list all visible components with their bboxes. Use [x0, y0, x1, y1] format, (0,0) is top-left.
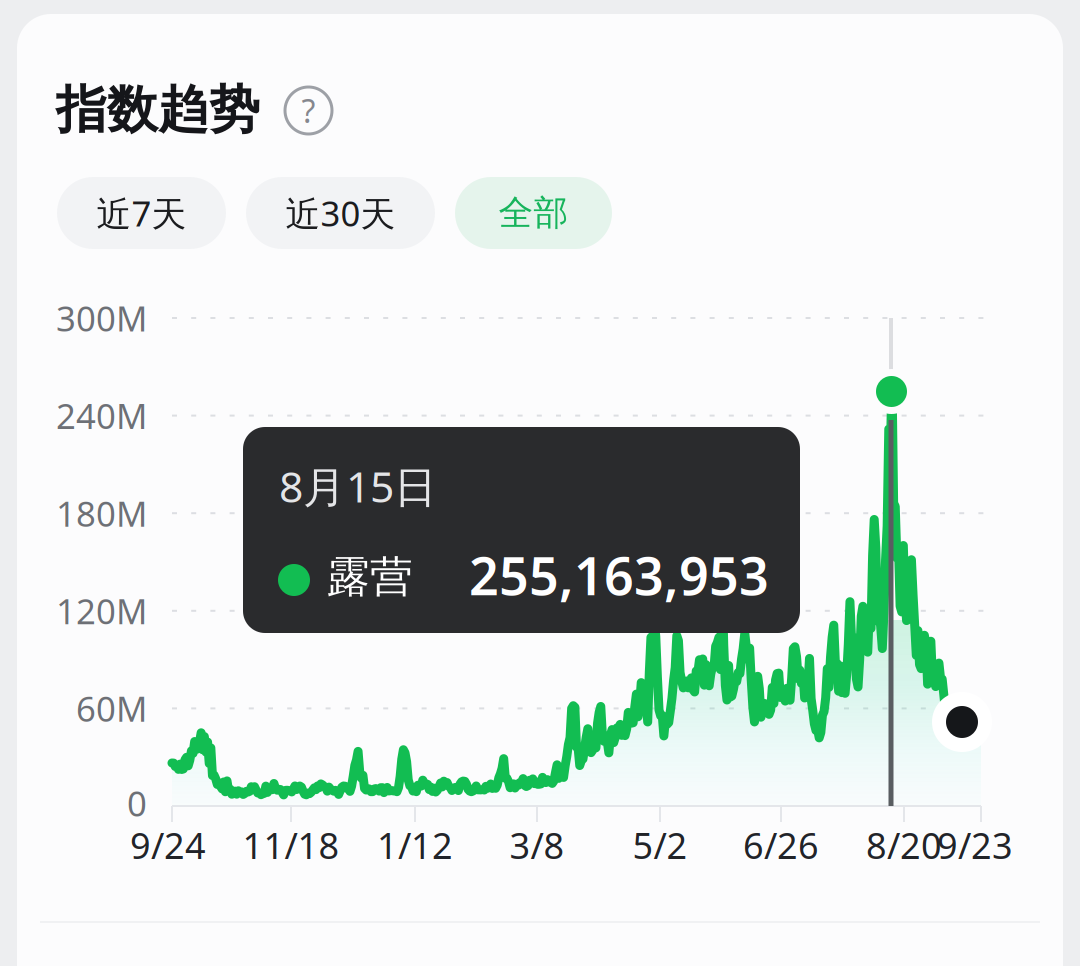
staticText: ?	[301, 89, 315, 132]
staticText: 300M	[56, 295, 147, 341]
staticText: 8月15日	[279, 458, 437, 514]
staticText: 3/8	[509, 821, 564, 869]
staticText: 0	[127, 780, 147, 826]
staticText: 5/2	[632, 821, 687, 869]
button[interactable]: 全部	[455, 177, 612, 249]
staticText: 露营	[327, 551, 413, 603]
staticText: 1/12	[377, 821, 453, 869]
staticText: 120M	[56, 588, 147, 634]
staticText: 6/26	[743, 821, 819, 869]
staticText: 8/20	[866, 821, 942, 869]
staticText: 180M	[56, 490, 147, 536]
staticText: 9/24	[130, 821, 206, 869]
staticText: 近30天	[285, 190, 395, 236]
staticText: 9/23	[937, 821, 1013, 869]
staticText: 近7天	[96, 190, 186, 236]
staticText: 指数趋势	[56, 79, 260, 141]
button[interactable]: 近30天	[246, 177, 435, 249]
button[interactable]: 近7天	[57, 177, 226, 249]
staticText: 11/18	[242, 821, 339, 869]
staticText: 全部	[498, 192, 568, 234]
staticText: 60M	[76, 685, 147, 731]
staticText: 240M	[56, 393, 147, 439]
button[interactable]: 关于指数趋势	[285, 87, 332, 134]
staticText: 255,163,953	[469, 540, 769, 610]
